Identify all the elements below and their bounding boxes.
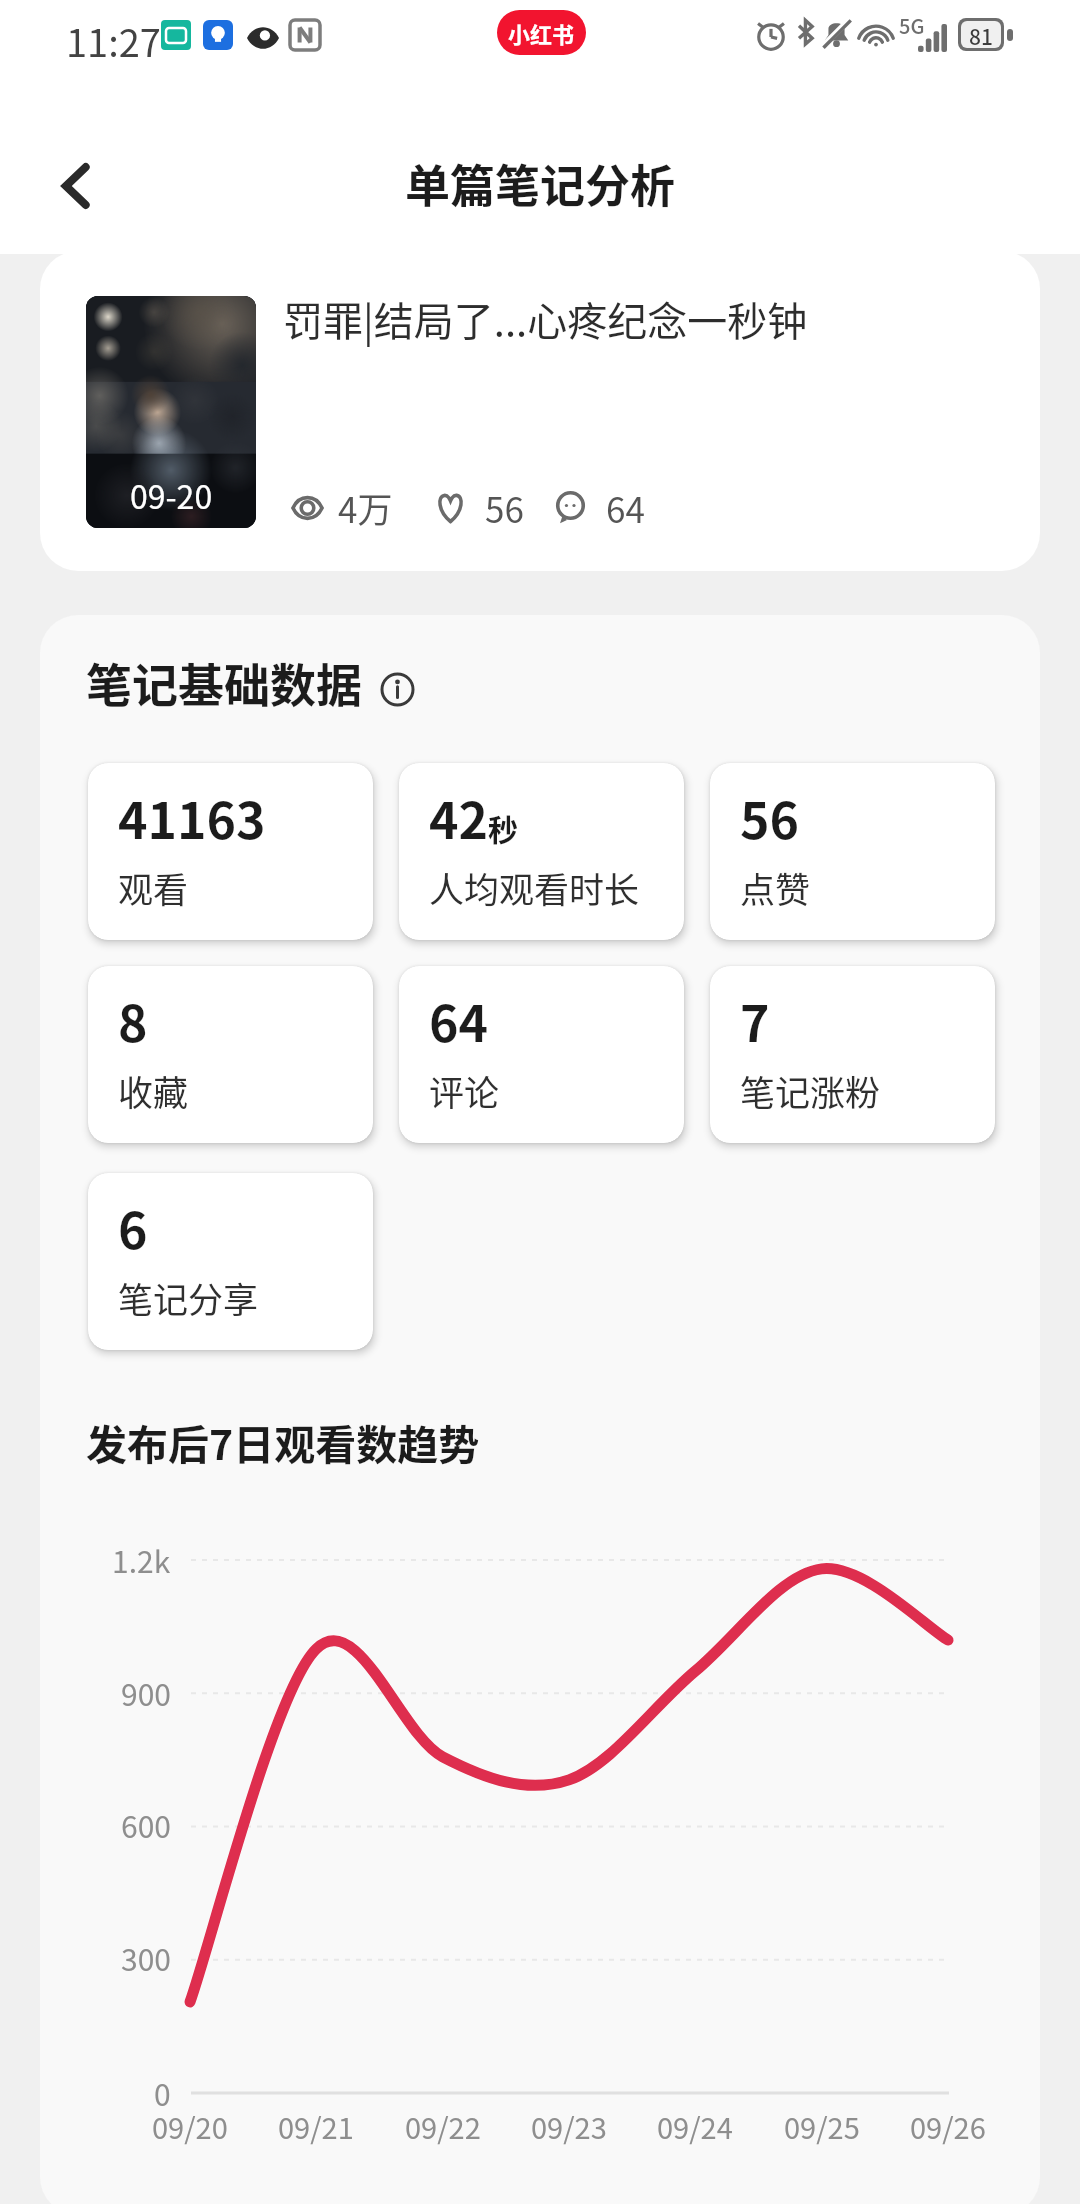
staticText: 56 [485,482,524,533]
staticText: 6 [118,1191,148,1263]
staticText: 42 [429,781,488,853]
staticText: 09/25 [784,2105,860,2147]
staticText: 1.2k [112,1538,171,1581]
staticText: 0 [154,2071,171,2114]
button[interactable]: 41163 [88,763,373,940]
staticText: 09/23 [531,2105,607,2147]
staticText: 小红书 [508,17,575,49]
staticText: 罚罪|结局了...心疼纪念一秒钟 [283,290,808,348]
staticText: 7 [740,984,770,1056]
staticText: 8 [118,984,148,1056]
staticText: 09/26 [910,2105,986,2147]
staticText: 81 [969,21,993,48]
staticText: 收藏 [118,1065,189,1116]
staticText: 发布后7日观看数趋势 [86,1412,480,1471]
button[interactable]: 8 [88,966,373,1143]
staticText: 41163 [118,781,266,853]
staticText: 4万 [338,482,393,533]
staticText: 5G [899,11,925,40]
staticText: 56 [740,781,799,853]
staticText: 笔记涨粉 [740,1065,881,1116]
staticText: 600 [121,1803,171,1846]
staticText: 300 [121,1936,171,1979]
button[interactable]: 7 [710,966,995,1143]
staticText: 单篇笔记分析 [405,151,676,216]
staticText: 人均观看时长 [429,862,640,913]
button[interactable]: 64 [399,966,684,1143]
staticText: 900 [121,1671,171,1714]
staticText: 09/24 [657,2105,733,2147]
staticText: 09/22 [405,2105,481,2147]
staticText: 笔记基础数据 [86,649,362,716]
button[interactable]: 42 [399,763,684,940]
button[interactable]: 56 [710,763,995,940]
staticText: 11:27 [66,13,161,68]
button[interactable]: 6 [88,1173,373,1350]
staticText: 秒 [488,806,518,849]
button[interactable]: Info [376,668,418,710]
button[interactable]: Back [30,140,122,232]
staticText: 笔记分享 [118,1272,259,1323]
staticText: 09-20 [130,472,213,518]
button[interactable]: 09-20 [40,251,1040,571]
staticText: 09/21 [278,2105,354,2147]
staticText: 评论 [429,1065,500,1116]
staticText: 64 [429,984,488,1056]
staticText: 点赞 [740,862,811,913]
staticText: 观看 [118,862,189,913]
staticText: 09/20 [152,2105,228,2147]
staticText: 64 [606,482,645,533]
